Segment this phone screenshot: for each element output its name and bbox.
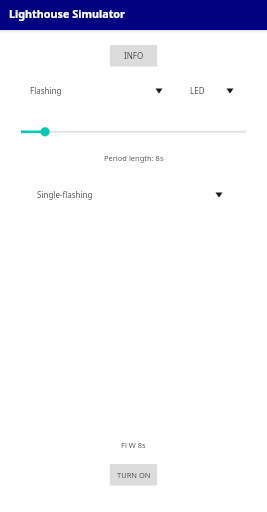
staticText: TURN ON — [117, 470, 151, 480]
staticText: Single-flashing — [37, 189, 93, 200]
staticText: Period length: 8s — [104, 153, 164, 163]
button[interactable]: Flashing — [22, 79, 170, 101]
other: Light source dropdown — [226, 88, 234, 94]
button[interactable]: TURN ON — [110, 464, 157, 485]
button[interactable]: Single-flashing — [28, 184, 223, 204]
button[interactable]: LED — [182, 79, 242, 101]
staticText: INFO — [124, 50, 144, 61]
staticText: LED — [190, 85, 205, 96]
staticText: Lighthouse Simulator — [9, 6, 125, 21]
button[interactable]: Period length slider — [12, 122, 255, 142]
staticText: Flashing — [30, 85, 62, 96]
button[interactable]: INFO — [110, 45, 157, 66]
other: Flash mode dropdown — [155, 88, 163, 94]
staticText: Fl W 8s — [121, 440, 146, 450]
other: Pattern dropdown — [215, 192, 223, 198]
